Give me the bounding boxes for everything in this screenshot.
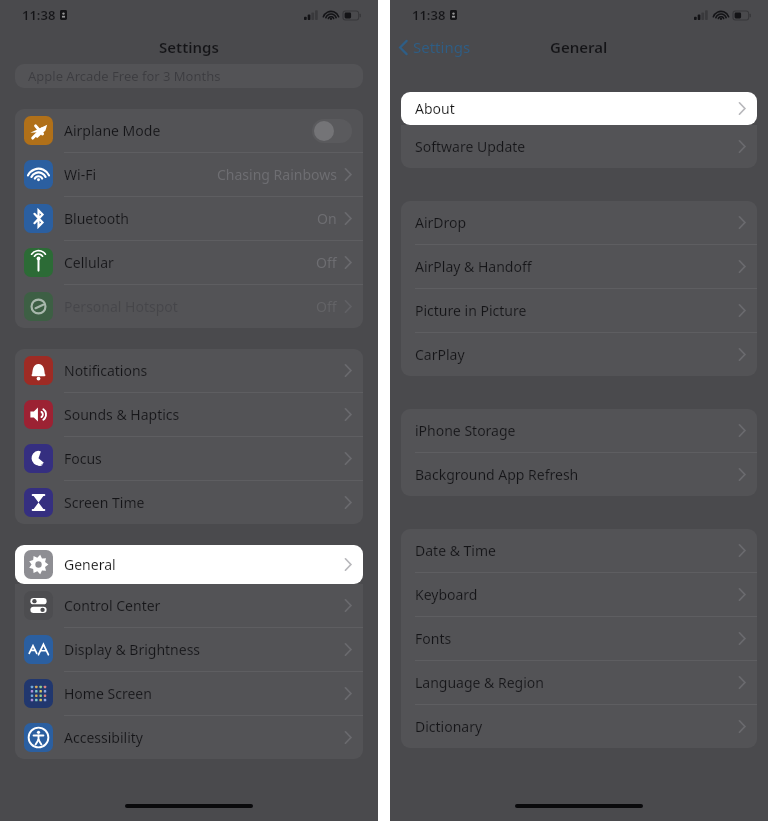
staticText: On [317,209,337,228]
button[interactable]: Home Screen [15,672,363,715]
staticText: Cellular [64,253,114,272]
staticText: Bluetooth [64,209,129,228]
staticText: Settings [159,37,219,57]
staticText: iPhone Storage [415,421,516,440]
staticText: Focus [64,449,102,468]
staticText: Picture in Picture [415,301,527,320]
staticText: Sounds & Haptics [64,405,180,424]
button[interactable]: General [15,545,363,584]
staticText: CarPlay [415,345,465,364]
button[interactable]: Airplane Mode [15,109,363,152]
button[interactable]: Notifications [15,349,363,392]
button[interactable]: Dictionary [401,705,757,748]
staticText: Language & Region [415,673,544,692]
button[interactable]: Focus [15,437,363,480]
button[interactable]: Software Update [401,125,757,168]
staticText: AirDrop [415,213,467,232]
staticText: Personal Hotspot [64,297,178,316]
button[interactable]: Bluetooth [15,197,363,240]
staticText: Date & Time [415,541,496,560]
staticText: Settings [413,37,471,57]
staticText: AirPlay & Handoff [415,257,532,276]
staticText: General [64,555,116,574]
staticText: Background App Refresh [415,465,579,484]
staticText: Home Screen [64,684,152,703]
staticText: Chasing Rainbows [217,165,337,184]
staticText: Airplane Mode [64,121,161,140]
staticText: Accessibility [64,728,143,747]
staticText: About [415,99,455,118]
staticText: Wi-Fi [64,165,97,184]
staticText: Screen Time [64,493,145,512]
button[interactable]: Control Center [15,584,363,627]
button[interactable]: iPhone Storage [401,409,757,452]
staticText: Off [316,297,337,316]
button[interactable]: Accessibility [15,716,363,759]
staticText: Keyboard [415,585,478,604]
staticText: Fonts [415,629,452,648]
staticText: General [550,37,608,57]
button[interactable]: Sounds & Haptics [15,393,363,436]
staticText: 11:38 [22,6,56,24]
staticText: Apple Arcade Free for 3 Months [28,67,221,85]
staticText: Dictionary [415,717,483,736]
button[interactable]: About [401,92,757,125]
staticText: Notifications [64,361,148,380]
button[interactable]: Keyboard [401,573,757,616]
staticText: Display & Brightness [64,640,201,659]
button[interactable]: Wi-Fi [15,153,363,196]
button[interactable]: Background App Refresh [401,453,757,496]
button[interactable]: Picture in Picture [401,289,757,332]
button[interactable]: Settings [399,37,471,57]
button[interactable]: Screen Time [15,481,363,524]
button[interactable]: Cellular [15,241,363,284]
staticText: Off [316,253,337,272]
button[interactable]: Display & Brightness [15,628,363,671]
button[interactable]: Fonts [401,617,757,660]
button[interactable]: AirDrop [401,201,757,244]
button[interactable]: Personal Hotspot [15,285,363,328]
button[interactable]: Apple Arcade Free for 3 Months [15,64,363,88]
button[interactable]: Language & Region [401,661,757,704]
staticText: 11:38 [412,6,446,24]
button[interactable]: Date & Time [401,529,757,572]
button[interactable]: Airplane Mode toggle, off [312,119,352,143]
staticText: Control Center [64,596,161,615]
button[interactable]: CarPlay [401,333,757,376]
staticText: Software Update [415,137,526,156]
button[interactable]: AirPlay & Handoff [401,245,757,288]
